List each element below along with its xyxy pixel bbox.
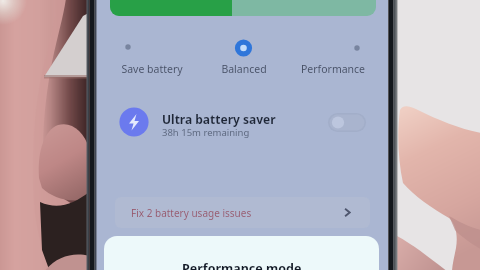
button[interactable]: Performance [288, 62, 378, 78]
staticText: Save battery [107, 62, 197, 78]
button[interactable]: Balanced [199, 62, 289, 78]
button[interactable]: Save battery [107, 62, 197, 78]
staticText: Balanced [199, 62, 289, 78]
button[interactable]: Ultra battery saver [97, 100, 388, 270]
staticText: Performance [288, 62, 378, 78]
staticText: Performance mode [182, 260, 302, 270]
staticText: Fix 2 battery usage issues [131, 206, 252, 220]
staticText: Ultra battery saver [162, 111, 276, 127]
button[interactable]: Fix 2 battery usage issues [115, 197, 370, 228]
button[interactable]: Toggle ultra battery saver [328, 113, 366, 132]
staticText: 38h 15m remaining [162, 126, 250, 139]
button[interactable]: Performance mode [104, 236, 379, 270]
